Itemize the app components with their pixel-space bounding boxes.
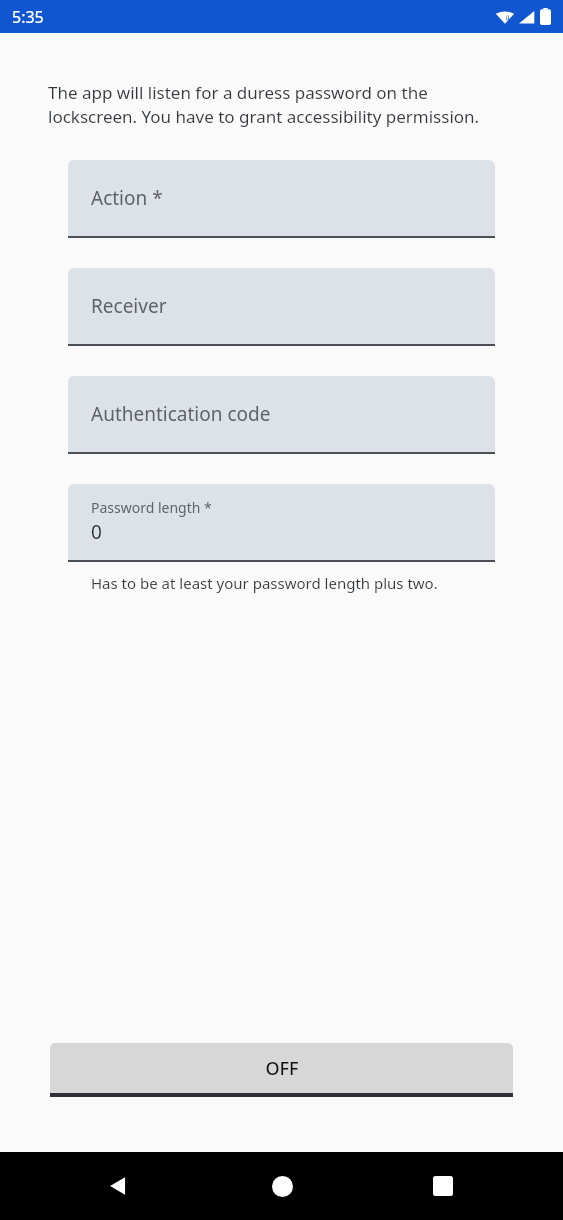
button[interactable]: Receiver: [68, 268, 495, 346]
staticText: Password length *: [91, 498, 212, 517]
staticText: Action *: [91, 185, 163, 211]
button[interactable]: Authentication code: [68, 376, 495, 454]
button[interactable]: Action *: [68, 160, 495, 238]
staticText: 0: [91, 519, 102, 545]
staticText: The app will listen for a duress passwor…: [48, 81, 508, 128]
button[interactable]: Back: [94, 1162, 142, 1210]
button[interactable]: Home: [258, 1162, 306, 1210]
button[interactable]: Recent apps: [419, 1162, 467, 1210]
staticText: Receiver: [91, 293, 167, 319]
staticText: Authentication code: [91, 401, 271, 427]
button[interactable]: OFF: [50, 1043, 513, 1097]
staticText: OFF: [265, 1056, 299, 1081]
button[interactable]: Password length *: [68, 484, 495, 562]
staticText: 5:35: [12, 6, 44, 28]
staticText: Has to be at least your password length …: [91, 573, 438, 593]
